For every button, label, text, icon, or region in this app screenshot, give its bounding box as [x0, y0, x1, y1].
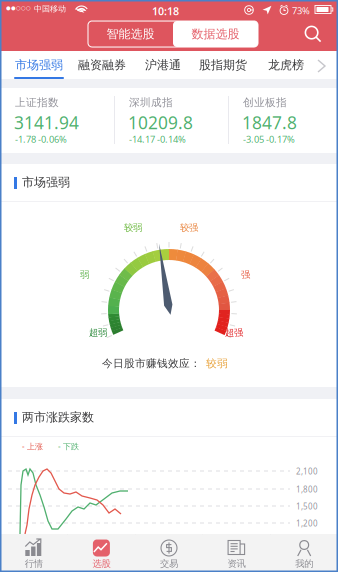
- staticText: 上证指数: [15, 96, 59, 109]
- staticText: - 下跌: [58, 441, 79, 452]
- staticText: ●●○○○: [6, 5, 31, 11]
- staticText: 较弱: [124, 222, 142, 233]
- staticText: 行情: [25, 558, 43, 569]
- staticText: 10:18: [152, 4, 179, 18]
- button[interactable]: 股指期货: [192, 51, 254, 79]
- button[interactable]: 资讯: [203, 534, 270, 572]
- staticText: 强: [241, 269, 250, 280]
- button[interactable]: 上证指数: [0, 88, 114, 153]
- staticText: 较弱: [206, 357, 228, 370]
- staticText: 1,500: [296, 501, 318, 512]
- staticText: 10209.8: [128, 111, 193, 134]
- button[interactable]: 行情: [0, 534, 68, 572]
- staticText: 今日股市赚钱效应：: [102, 357, 201, 370]
- button[interactable]: 更多: [310, 52, 333, 80]
- staticText: -1.78 -0.06%: [15, 133, 67, 145]
- staticText: -3.05 -0.17%: [243, 133, 295, 145]
- button[interactable]: 沪港通: [138, 51, 188, 79]
- button[interactable]: 数据选股: [173, 21, 258, 47]
- staticText: 创业板指: [243, 96, 287, 109]
- staticText: 股指期货: [199, 58, 247, 72]
- staticText: 2,100: [296, 466, 318, 477]
- staticText: 市场强弱: [22, 175, 70, 190]
- button[interactable]: 交易: [135, 534, 203, 572]
- staticText: 超弱: [89, 327, 107, 338]
- staticText: 融资融券: [78, 58, 126, 72]
- staticText: 超强: [225, 327, 243, 338]
- staticText: 深圳成指: [129, 96, 173, 109]
- staticText: 龙虎榜: [268, 58, 304, 72]
- staticText: 弱: [80, 269, 89, 280]
- staticText: 选股: [92, 558, 110, 569]
- button[interactable]: 我的: [270, 534, 338, 572]
- staticText: 3141.94: [14, 111, 79, 134]
- staticText: 市场强弱: [15, 58, 63, 72]
- staticText: 73%: [292, 4, 310, 17]
- staticText: 1,800: [296, 484, 318, 495]
- staticText: 1847.8: [242, 111, 297, 134]
- staticText: - 上涨: [22, 441, 43, 452]
- staticText: 交易: [160, 558, 178, 569]
- staticText: 1,200: [296, 518, 318, 529]
- staticText: 我的: [295, 558, 313, 569]
- staticText: 中国移动: [34, 4, 66, 14]
- button[interactable]: 搜索: [300, 21, 326, 47]
- button[interactable]: 深圳成指: [114, 88, 228, 153]
- button[interactable]: 选股: [68, 534, 135, 572]
- staticText: -14.17 -0.14%: [129, 133, 186, 145]
- button[interactable]: 龙虎榜: [261, 51, 311, 79]
- button[interactable]: 融资融券: [71, 51, 133, 79]
- staticText: 智能选股: [106, 27, 154, 41]
- staticText: 数据选股: [191, 27, 239, 41]
- button[interactable]: 智能选股: [88, 21, 173, 47]
- staticText: 较强: [180, 222, 198, 233]
- button[interactable]: 市场强弱: [8, 51, 70, 79]
- staticText: 沪港通: [145, 58, 181, 72]
- staticText: 资讯: [228, 558, 246, 569]
- staticText: 两市涨跌家数: [22, 410, 94, 425]
- button[interactable]: 创业板指: [228, 88, 338, 153]
